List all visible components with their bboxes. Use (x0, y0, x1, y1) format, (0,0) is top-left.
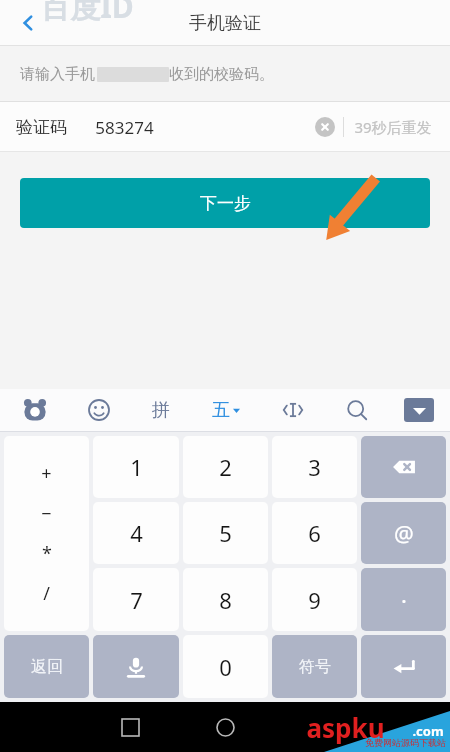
button[interactable]: Home (203, 705, 247, 749)
staticText: 返回 (31, 657, 63, 677)
button[interactable]: 五 (206, 393, 246, 428)
staticText: 39秒后重发 (354, 117, 432, 137)
button[interactable]: Enter (361, 635, 446, 698)
button[interactable]: 8 (183, 568, 268, 631)
button[interactable]: 返回 (4, 635, 89, 698)
staticText: 6 (308, 518, 321, 548)
staticText: 免费网站源码下载站 (365, 737, 446, 748)
staticText: 五 (212, 399, 230, 422)
staticText: 手机验证 (189, 12, 261, 35)
button[interactable]: Search (340, 393, 374, 427)
button[interactable]: Clear (307, 109, 343, 145)
button[interactable]: Hide keyboard (404, 398, 434, 422)
button[interactable]: Backspace (361, 436, 446, 498)
staticText: 583274 (95, 116, 154, 139)
button[interactable]: 4 (93, 502, 179, 564)
staticText: aspku (306, 710, 385, 745)
button[interactable]: 9 (272, 568, 357, 631)
staticText: 符号 (299, 657, 331, 677)
staticText: 5 (219, 518, 232, 548)
staticText: · (401, 585, 407, 615)
button[interactable]: 5 (183, 502, 268, 564)
button[interactable]: Back (6, 1, 50, 45)
staticText: 1 (130, 452, 143, 482)
button[interactable]: Baidu (18, 393, 52, 427)
staticText: 4 (130, 518, 143, 548)
button[interactable]: 1 (93, 436, 179, 498)
button[interactable]: 2 (183, 436, 268, 498)
button[interactable]: 6 (272, 502, 357, 564)
button[interactable]: 下一步 (20, 178, 430, 228)
button[interactable]: Emoji (82, 393, 116, 427)
button[interactable]: @ (361, 502, 446, 564)
staticText: 收到的校验码。 (169, 65, 274, 84)
staticText: 2 (219, 452, 232, 482)
staticText: 拼 (152, 399, 170, 422)
staticText: @ (394, 518, 414, 548)
button[interactable]: 符号 (272, 635, 357, 698)
button[interactable]: 0 (183, 635, 268, 698)
staticText: 0 (219, 652, 232, 682)
staticText: 验证码 (16, 117, 67, 138)
staticText: 9 (308, 585, 321, 615)
staticText: / (43, 581, 50, 606)
button[interactable]: 7 (93, 568, 179, 631)
staticText: 8 (219, 585, 232, 615)
button[interactable]: + (4, 436, 89, 631)
staticText: − (41, 501, 52, 526)
staticText: .com (412, 722, 444, 740)
staticText: 7 (130, 585, 143, 615)
staticText: 下一步 (200, 193, 251, 214)
staticText: 请输入手机 (20, 65, 95, 84)
button[interactable]: 拼 (146, 393, 176, 428)
button[interactable]: Cursor (276, 393, 310, 427)
staticText: 3 (308, 452, 321, 482)
button[interactable]: Recents (108, 705, 152, 749)
button[interactable]: 39秒后重发 (344, 117, 434, 137)
staticText: 百度ID (40, 0, 134, 27)
button[interactable]: 3 (272, 436, 357, 498)
button[interactable]: · (361, 568, 446, 631)
staticText: + (41, 461, 52, 486)
staticText: * (42, 541, 52, 566)
button[interactable]: Voice input (93, 635, 179, 698)
